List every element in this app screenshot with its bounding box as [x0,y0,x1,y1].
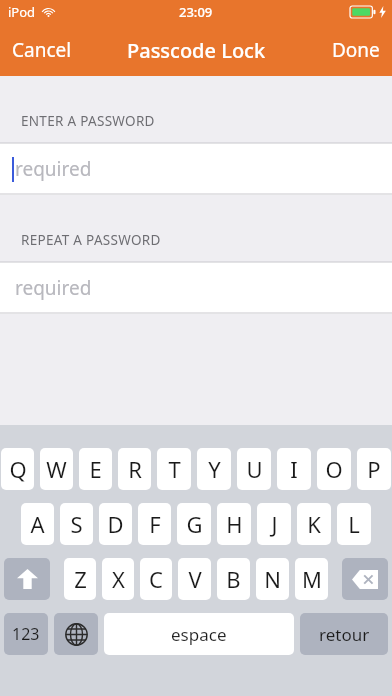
button[interactable]: E [79,448,112,490]
staticText: H [226,509,243,539]
staticText: X [112,564,125,594]
staticText: Y [208,454,221,484]
button[interactable]: R [118,448,151,490]
staticText: Q [9,454,27,484]
button[interactable]: F [138,503,171,545]
button[interactable]: L [337,503,371,545]
staticText: A [30,509,45,539]
staticText: B [226,564,241,594]
button[interactable]: O [317,448,351,490]
button[interactable]: retour [300,613,388,655]
button[interactable]: Q [1,448,34,490]
staticText: F [149,509,161,539]
button[interactable]: X [102,558,134,600]
button[interactable]: B [217,558,250,600]
button[interactable]: A [21,503,54,545]
button[interactable]: V [178,558,211,600]
staticText: L [348,509,360,539]
staticText: iPod [8,3,36,21]
button[interactable]: Cancel [0,27,84,73]
button[interactable]: S [60,503,93,545]
button[interactable]: D [99,503,132,545]
button[interactable]: U [237,448,271,490]
staticText: Z [74,564,87,594]
staticText: R [128,454,142,484]
button[interactable]: G [177,503,211,545]
staticText: 123 [12,623,40,645]
button[interactable]: Shift [4,558,50,600]
button[interactable]: M [295,558,328,600]
staticText: I [290,454,298,484]
staticText: P [367,454,381,484]
button[interactable]: Backspace [342,558,388,600]
button[interactable]: Z [64,558,96,600]
staticText: U [246,454,263,484]
button[interactable]: C [140,558,172,600]
staticText: W [46,454,67,484]
button[interactable]: T [157,448,191,490]
staticText: C [149,564,163,594]
button[interactable]: required [0,262,392,314]
staticText: S [70,509,83,539]
staticText: Passcode Lock [127,37,266,64]
button[interactable]: Done [320,27,392,73]
staticText: J [271,509,278,539]
staticText: required [15,275,92,301]
staticText: G [186,509,203,539]
button[interactable]: H [217,503,251,545]
staticText: V [188,564,202,594]
staticText: espace [171,623,227,646]
staticText: K [307,509,321,539]
staticText: required [15,156,92,182]
button[interactable]: espace [104,613,294,655]
button[interactable]: N [256,558,289,600]
staticText: ENTER A PASSWORD [21,112,155,130]
staticText: T [168,454,181,484]
button[interactable]: Switch keyboard language [54,613,98,655]
staticText: Done [332,37,380,63]
staticText: O [325,454,343,484]
button[interactable]: W [40,448,73,490]
staticText: M [302,564,322,594]
staticText: REPEAT A PASSWORD [21,231,161,249]
button[interactable]: I [277,448,311,490]
staticText: N [264,564,281,594]
button[interactable]: Y [197,448,231,490]
button[interactable]: K [297,503,331,545]
button[interactable]: required [0,143,392,195]
staticText: Cancel [12,37,72,63]
button[interactable]: 123 [4,613,48,655]
staticText: 23:09 [179,3,213,21]
staticText: retour [319,623,370,646]
staticText: E [89,454,102,484]
staticText: D [107,509,124,539]
button[interactable]: J [257,503,291,545]
button[interactable]: P [357,448,391,490]
